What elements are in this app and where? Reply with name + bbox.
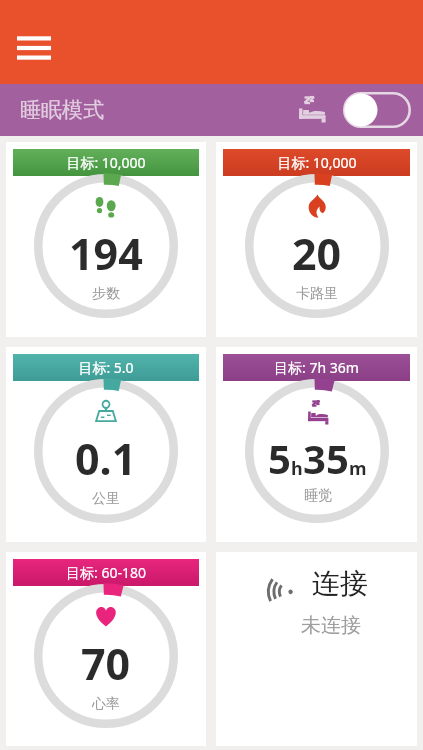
staticText: 0.1 bbox=[75, 429, 137, 488]
staticText: 未连接 bbox=[301, 613, 361, 638]
staticText: 公里 bbox=[92, 490, 120, 508]
staticText: 连接 bbox=[312, 566, 368, 601]
button[interactable]: Sleep mode toggle, off bbox=[343, 92, 411, 128]
staticText: 194 bbox=[69, 224, 143, 283]
staticText: m bbox=[349, 456, 367, 481]
staticText: 20 bbox=[292, 224, 342, 283]
button[interactable]: 连接 bbox=[216, 552, 417, 746]
staticText: 目标: 10,000 bbox=[66, 153, 146, 172]
staticText: h bbox=[291, 456, 303, 481]
staticText: 心率 bbox=[92, 695, 120, 713]
button[interactable]: 睡眠模式 bbox=[0, 84, 423, 136]
button[interactable]: 目标: 7h 36m bbox=[216, 347, 417, 542]
staticText: 步数 bbox=[92, 285, 120, 303]
staticText: 卡路里 bbox=[296, 285, 338, 303]
staticText: 5 bbox=[268, 431, 291, 485]
staticText: 目标: 10,000 bbox=[277, 153, 357, 172]
staticText: 70 bbox=[81, 634, 131, 693]
button[interactable]: 目标: 10,000 bbox=[6, 142, 206, 337]
staticText: 目标: 5.0 bbox=[78, 358, 134, 377]
button[interactable]: 目标: 10,000 bbox=[216, 142, 417, 337]
staticText: 睡眠模式 bbox=[20, 97, 104, 123]
staticText: 目标: 60-180 bbox=[66, 563, 146, 582]
button[interactable]: 目标: 5.0 bbox=[6, 347, 206, 542]
button[interactable]: 目标: 60-180 bbox=[6, 552, 206, 746]
staticText: 35 bbox=[303, 431, 349, 485]
button[interactable]: Open navigation menu bbox=[12, 28, 56, 68]
staticText: 睡觉 bbox=[304, 487, 332, 505]
staticText: 目标: 7h 36m bbox=[274, 358, 359, 377]
